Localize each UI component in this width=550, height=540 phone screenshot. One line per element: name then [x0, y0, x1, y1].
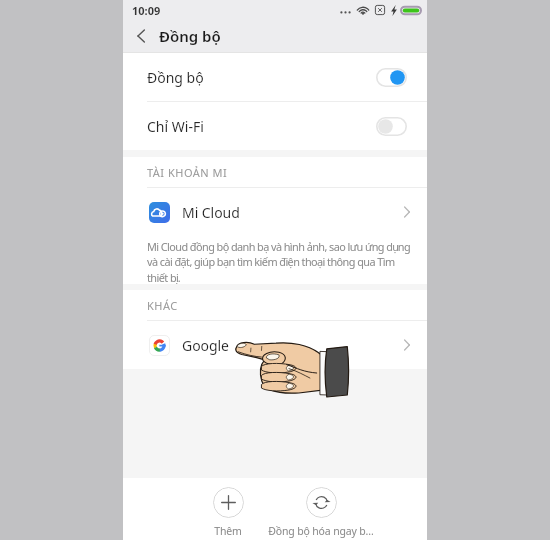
staticText: Mi Cloud đồng bộ danh bạ và hình ảnh, sa…	[147, 239, 411, 284]
button[interactable]: Thêm	[188, 487, 268, 538]
staticText: Thêm	[214, 524, 242, 538]
button[interactable]: Chỉ Wi-Fi	[123, 102, 427, 150]
staticText: Chỉ Wi-Fi	[147, 117, 204, 136]
button[interactable]: Đồng bộ	[123, 53, 427, 101]
button[interactable]: Google	[123, 321, 427, 369]
staticText: Google	[182, 336, 229, 355]
staticText: Đồng bộ hóa ngay b…	[268, 524, 374, 538]
button[interactable]: Back	[123, 20, 159, 52]
button[interactable]: Đồng bộ hóa ngay b…	[266, 487, 376, 538]
staticText: Đồng bộ	[159, 26, 221, 46]
staticText: TÀI KHOẢN MI	[147, 165, 228, 180]
staticText: Đồng bộ	[147, 68, 204, 87]
staticText: 10:09	[132, 3, 161, 18]
button[interactable]: Mi Cloud	[123, 188, 427, 236]
staticText: Mi Cloud	[182, 203, 240, 222]
staticText: KHÁC	[147, 298, 178, 313]
